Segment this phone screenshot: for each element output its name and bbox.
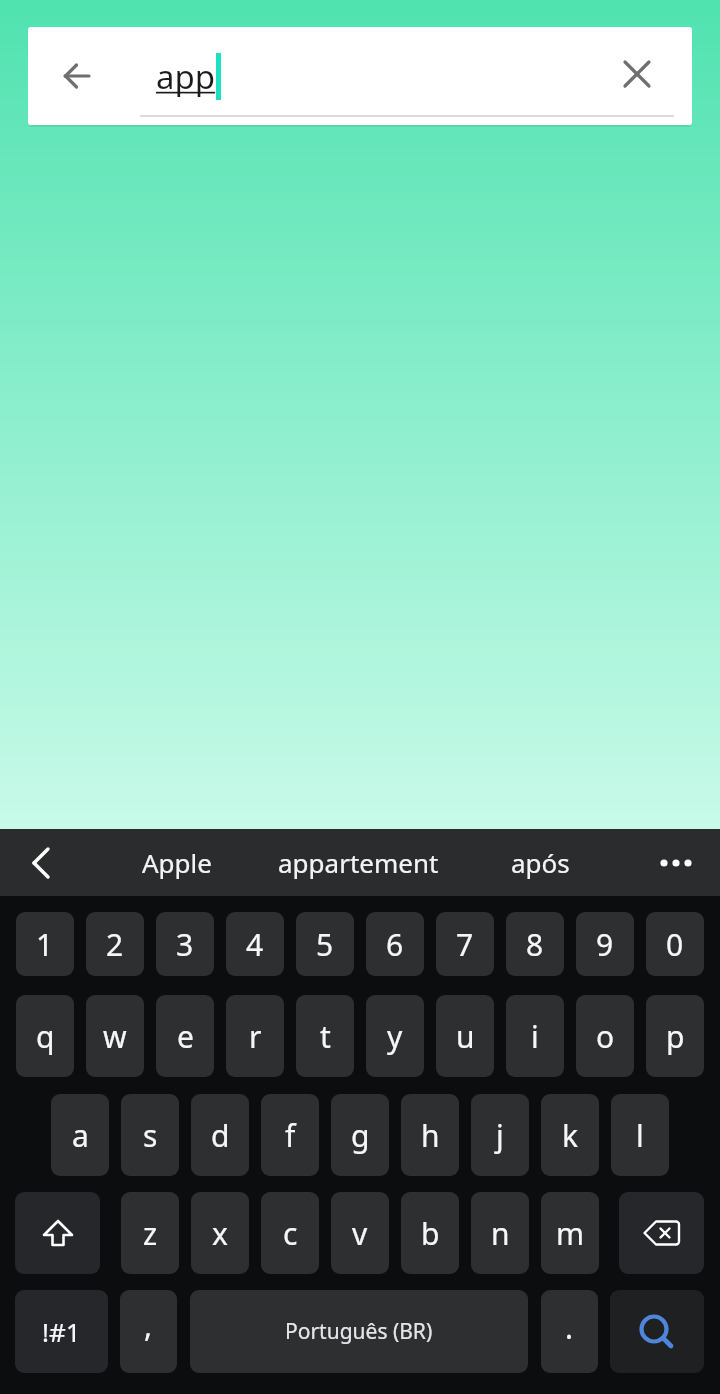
button[interactable]: n bbox=[471, 1192, 529, 1274]
staticText: j bbox=[496, 1115, 504, 1156]
staticText: r bbox=[249, 1016, 262, 1057]
button[interactable]: !#1 bbox=[15, 1290, 108, 1373]
staticText: f bbox=[285, 1115, 296, 1156]
staticText: 0 bbox=[666, 924, 684, 965]
staticText: t bbox=[320, 1016, 331, 1057]
staticText: z bbox=[143, 1213, 158, 1254]
staticText: u bbox=[456, 1016, 475, 1057]
staticText: !#1 bbox=[42, 1314, 81, 1349]
button[interactable]: x bbox=[191, 1192, 249, 1274]
staticText: x bbox=[212, 1213, 228, 1254]
staticText: após bbox=[511, 845, 570, 880]
button[interactable]: 4 bbox=[226, 912, 284, 976]
button[interactable]: 0 bbox=[646, 912, 704, 976]
button[interactable]: p bbox=[646, 995, 704, 1077]
staticText: a bbox=[72, 1115, 89, 1156]
button[interactable]: 3 bbox=[156, 912, 214, 976]
staticText: h bbox=[421, 1115, 440, 1156]
button[interactable]: y bbox=[366, 995, 424, 1077]
button[interactable]: h bbox=[401, 1094, 459, 1176]
staticText: 5 bbox=[316, 924, 334, 965]
staticText: 8 bbox=[526, 924, 544, 965]
button[interactable] bbox=[624, 61, 650, 87]
button[interactable]: z bbox=[121, 1192, 179, 1274]
staticText: appartement bbox=[278, 845, 439, 880]
staticText: 9 bbox=[596, 924, 614, 965]
button[interactable]: a bbox=[51, 1094, 109, 1176]
button[interactable] bbox=[31, 848, 55, 878]
button[interactable]: 8 bbox=[506, 912, 564, 976]
button[interactable]: e bbox=[156, 995, 214, 1077]
button[interactable]: f bbox=[261, 1094, 319, 1176]
button[interactable]: r bbox=[226, 995, 284, 1077]
staticText: 7 bbox=[456, 924, 474, 965]
button[interactable]: Português (BR) bbox=[190, 1290, 528, 1373]
staticText: 3 bbox=[176, 924, 194, 965]
staticText: g bbox=[351, 1115, 370, 1156]
button[interactable]: u bbox=[436, 995, 494, 1077]
button[interactable]: , bbox=[120, 1290, 177, 1373]
button[interactable] bbox=[619, 1192, 704, 1274]
button[interactable]: c bbox=[261, 1192, 319, 1274]
button[interactable]: m bbox=[541, 1192, 599, 1274]
button[interactable]: b bbox=[401, 1192, 459, 1274]
staticText: , bbox=[144, 1305, 153, 1346]
staticText: p bbox=[666, 1016, 685, 1057]
button[interactable]: Apple bbox=[97, 829, 257, 896]
button[interactable]: g bbox=[331, 1094, 389, 1176]
staticText: k bbox=[562, 1115, 579, 1156]
staticText: o bbox=[596, 1016, 615, 1057]
staticText: d bbox=[211, 1115, 230, 1156]
button[interactable] bbox=[63, 62, 91, 90]
button[interactable]: j bbox=[471, 1094, 529, 1176]
button[interactable]: 6 bbox=[366, 912, 424, 976]
button[interactable]: k bbox=[541, 1094, 599, 1176]
button[interactable]: o bbox=[576, 995, 634, 1077]
staticText: e bbox=[177, 1016, 194, 1057]
staticText: n bbox=[491, 1213, 510, 1254]
button[interactable]: 2 bbox=[86, 912, 144, 976]
staticText: Português (BR) bbox=[285, 1317, 433, 1346]
staticText: i bbox=[531, 1016, 539, 1057]
staticText: s bbox=[143, 1115, 158, 1156]
button[interactable]: 1 bbox=[16, 912, 74, 976]
button[interactable]: 5 bbox=[296, 912, 354, 976]
staticText: 2 bbox=[106, 924, 124, 965]
button[interactable]: q bbox=[16, 995, 74, 1077]
button[interactable]: 9 bbox=[576, 912, 634, 976]
button[interactable]: . bbox=[541, 1290, 598, 1373]
staticText: c bbox=[283, 1213, 298, 1254]
button[interactable] bbox=[15, 1192, 100, 1274]
button[interactable]: 7 bbox=[436, 912, 494, 976]
staticText: b bbox=[421, 1213, 440, 1254]
button[interactable] bbox=[610, 1290, 704, 1373]
staticText: 1 bbox=[36, 924, 54, 965]
staticText: Apple bbox=[142, 845, 212, 880]
staticText: q bbox=[36, 1016, 55, 1057]
staticText: l bbox=[636, 1115, 644, 1156]
button[interactable]: l bbox=[611, 1094, 669, 1176]
button[interactable]: após bbox=[470, 829, 610, 896]
staticText: y bbox=[387, 1016, 403, 1057]
button[interactable]: i bbox=[506, 995, 564, 1077]
button[interactable]: t bbox=[296, 995, 354, 1077]
button[interactable] bbox=[660, 858, 692, 868]
staticText: . bbox=[565, 1307, 574, 1348]
staticText: app bbox=[156, 54, 216, 99]
staticText: m bbox=[556, 1213, 585, 1254]
staticText: v bbox=[352, 1213, 368, 1254]
button[interactable]: appartement bbox=[248, 829, 468, 896]
staticText: w bbox=[103, 1016, 127, 1057]
button[interactable]: d bbox=[191, 1094, 249, 1176]
button[interactable]: s bbox=[121, 1094, 179, 1176]
staticText: 6 bbox=[386, 924, 404, 965]
button[interactable]: w bbox=[86, 995, 144, 1077]
button[interactable]: v bbox=[331, 1192, 389, 1274]
staticText: 4 bbox=[246, 924, 264, 965]
